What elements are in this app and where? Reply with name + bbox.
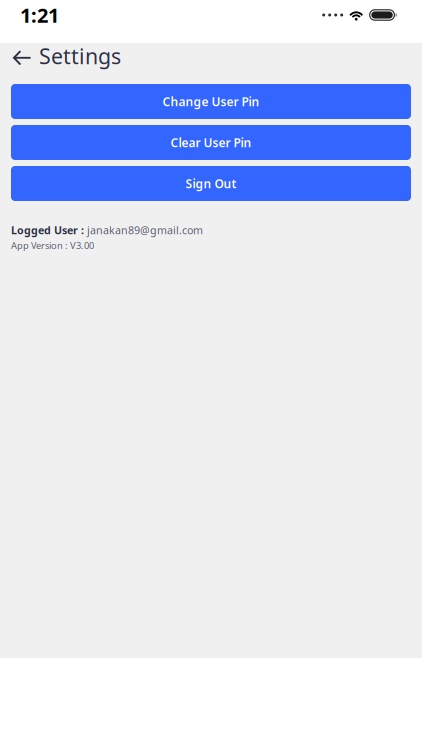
staticText: Sign Out	[185, 175, 236, 191]
button[interactable]: Sign Out	[11, 166, 411, 201]
button[interactable]: Clear User Pin	[11, 125, 411, 160]
staticText: Settings	[39, 42, 121, 70]
button[interactable]: Change User Pin	[11, 84, 411, 119]
staticText: App Version : V3.00	[11, 239, 94, 252]
staticText: janakan89@gmail.com	[87, 223, 203, 237]
staticText: Logged User :	[11, 223, 84, 237]
staticText: Clear User Pin	[170, 134, 251, 150]
staticText: 1:21	[20, 2, 59, 28]
staticText: Change User Pin	[162, 93, 259, 109]
button[interactable]: Back	[0, 43, 39, 72]
